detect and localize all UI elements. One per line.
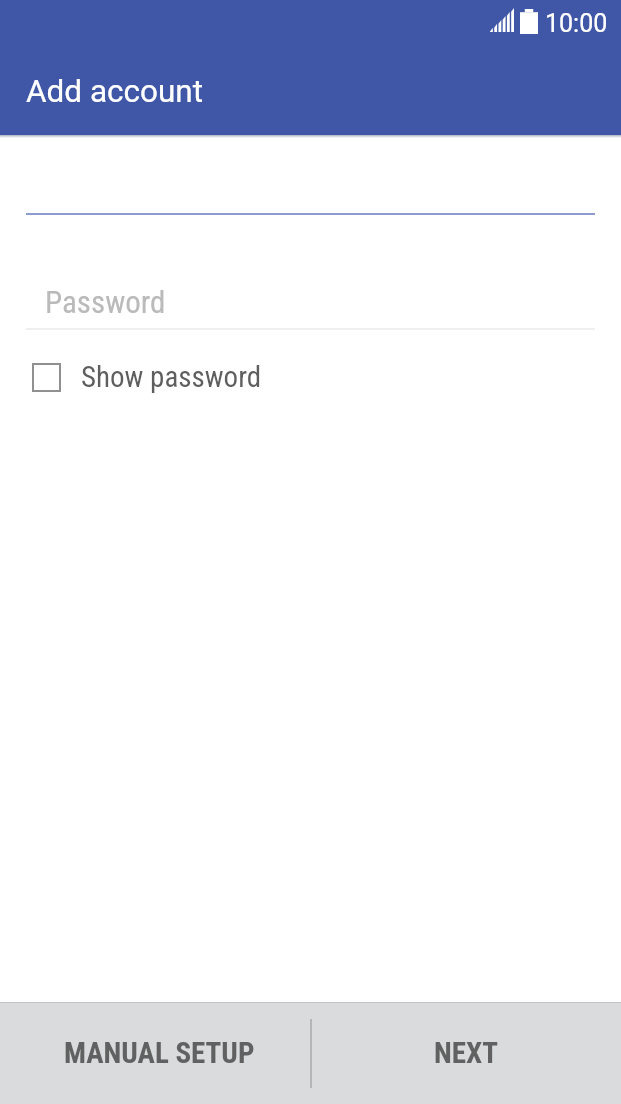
- button[interactable]: Password: [0, 262, 621, 330]
- staticText: 10:00: [545, 9, 608, 38]
- staticText: MANUAL SETUP: [64, 1036, 255, 1070]
- button[interactable]: Show password: [0, 348, 621, 406]
- staticText: Password: [45, 284, 166, 320]
- other: Mobile signal strength: [490, 8, 514, 32]
- button[interactable]: MANUAL SETUP: [0, 1002, 310, 1104]
- button[interactable]: NEXT: [310, 1002, 621, 1104]
- staticText: Add account: [26, 73, 204, 110]
- staticText: Show password: [81, 360, 262, 394]
- other: Battery full: [520, 9, 538, 34]
- button[interactable]: [0, 140, 621, 215]
- staticText: NEXT: [434, 1036, 498, 1070]
